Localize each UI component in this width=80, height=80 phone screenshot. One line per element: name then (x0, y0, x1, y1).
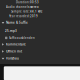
staticText: 00:53 (30, 0, 39, 4)
button[interactable]: Suffix ausblenden (0, 35, 80, 41)
staticText: Name & Suffix (6, 21, 28, 25)
staticText: Duration: (16, 0, 30, 4)
staticText: 44,1 kHz (30, 10, 42, 13)
staticText: Kommentare (6, 42, 26, 46)
staticText: Öffnen mit (6, 49, 22, 53)
button[interactable]: Kommentare (0, 41, 80, 48)
staticText: Stereo (30, 5, 39, 9)
staticText: Sample rate: (11, 10, 30, 13)
staticText: 2019 (30, 14, 38, 18)
button[interactable]: Vorschau (0, 55, 80, 62)
button[interactable]: Name & Suffix (0, 18, 80, 27)
button[interactable]: Öffnen mit (0, 48, 80, 55)
staticText: Suffix ausblenden (9, 36, 35, 40)
staticText: Year recorded: (9, 14, 30, 18)
staticText: Vorschau (6, 56, 19, 60)
staticText: Audio channels: (6, 5, 30, 9)
staticText: 25.mp3 (5, 29, 17, 33)
